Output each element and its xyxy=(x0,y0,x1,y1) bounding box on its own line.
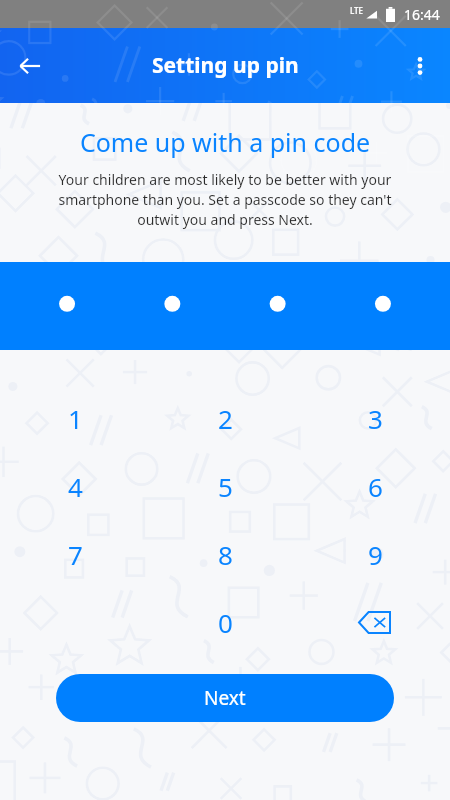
button[interactable]: More options xyxy=(398,44,442,88)
button[interactable]: 8 xyxy=(150,520,300,588)
staticText: Your children are most likely to be bett… xyxy=(52,170,398,229)
staticText: Next xyxy=(204,685,246,711)
staticText: 0 xyxy=(218,605,233,640)
staticText: 4 xyxy=(68,469,83,504)
staticText: 3 xyxy=(368,401,383,436)
staticText: 8 xyxy=(218,537,233,572)
staticText: 1 xyxy=(68,401,83,436)
button[interactable]: 0 xyxy=(150,588,300,656)
staticText: Come up with a pin code xyxy=(0,125,450,159)
button[interactable]: Next xyxy=(56,674,394,722)
staticText: 2 xyxy=(218,401,233,436)
button[interactable]: 5 xyxy=(150,452,300,520)
button[interactable]: Backspace xyxy=(300,588,450,656)
button[interactable]: 3 xyxy=(300,384,450,452)
button[interactable]: Back xyxy=(8,44,52,88)
button[interactable]: 6 xyxy=(300,452,450,520)
staticText: 6 xyxy=(368,469,383,504)
button[interactable]: 7 xyxy=(0,520,150,588)
staticText: 5 xyxy=(218,469,233,504)
staticText: LTE xyxy=(350,5,364,16)
button[interactable]: 1 xyxy=(0,384,150,452)
staticText: 9 xyxy=(368,537,383,572)
button[interactable]: 2 xyxy=(150,384,300,452)
staticText: 16:44 xyxy=(404,5,440,24)
button[interactable]: 9 xyxy=(300,520,450,588)
staticText: 7 xyxy=(68,537,83,572)
staticText: Setting up pin xyxy=(152,51,299,80)
button[interactable]: 4 xyxy=(0,452,150,520)
